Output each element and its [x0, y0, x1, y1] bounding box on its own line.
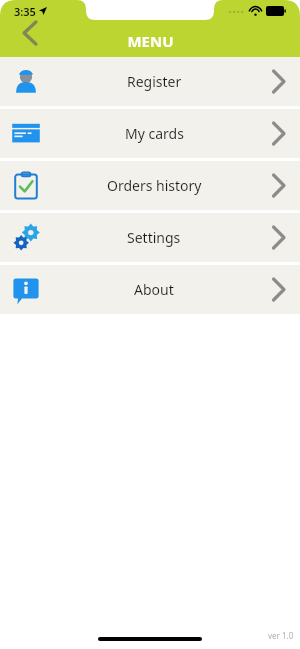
staticText: ver 1.0 [268, 630, 294, 641]
button[interactable]: About [0, 265, 300, 314]
button[interactable]: Register [0, 57, 300, 106]
staticText: Register [127, 72, 182, 91]
staticText: MENU [127, 31, 174, 51]
staticText: My cards [125, 124, 184, 143]
staticText: 3:35 [14, 4, 36, 19]
button[interactable]: My cards [0, 109, 300, 158]
button[interactable]: Settings [0, 213, 300, 262]
staticText: About [134, 280, 174, 299]
staticText: Orders history [107, 176, 202, 195]
button[interactable]: Orders history [0, 161, 300, 210]
staticText: Settings [127, 228, 181, 247]
button[interactable]: Back [8, 11, 52, 55]
